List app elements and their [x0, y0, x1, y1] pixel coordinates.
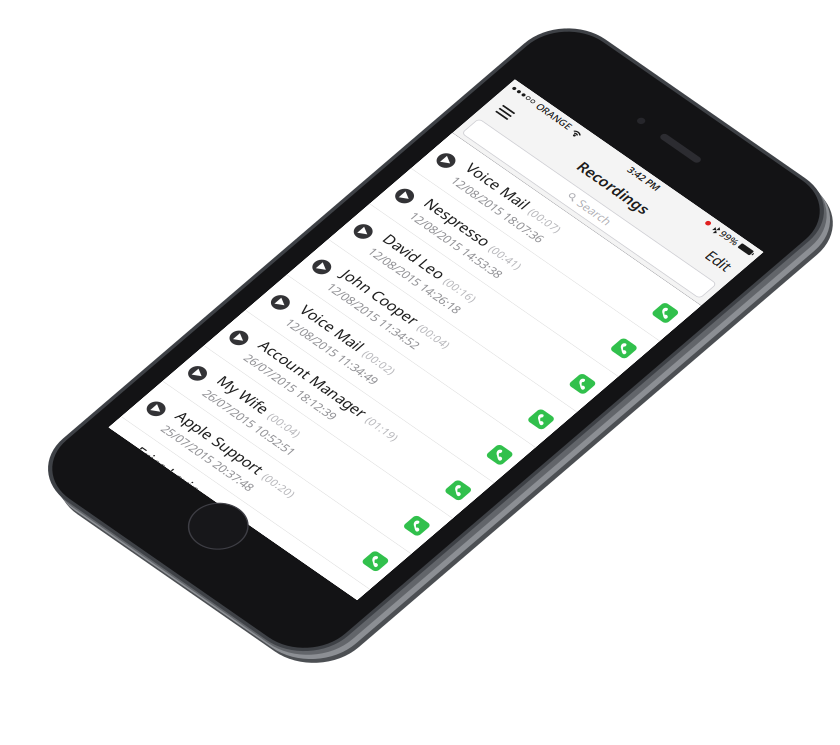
staticText: (00:16) [154, 360, 198, 378]
button[interactable]: Voice Mail [17, 209, 392, 277]
staticText: Voice Mail [62, 491, 151, 516]
staticText: 12/08/2015 14:53:38 [62, 315, 196, 334]
button[interactable]: Search [17, 170, 392, 208]
button[interactable]: Edit [339, 128, 388, 168]
button[interactable]: Call back [358, 367, 381, 390]
button[interactable]: Call back [358, 571, 381, 594]
staticText: 26/07/2015 18:12:39 [62, 587, 196, 606]
button[interactable]: Call back [358, 299, 381, 322]
staticText: 12/08/2015 11:34:49 [62, 519, 196, 538]
staticText: David Leo [62, 355, 148, 380]
button[interactable]: Voice Mail [17, 481, 392, 549]
button[interactable]: Nespresso [17, 277, 392, 345]
button[interactable]: Account Manager [17, 549, 392, 617]
staticText: (00:04) [177, 428, 221, 446]
staticText: John Cooper [62, 423, 171, 448]
staticText: (00:02) [157, 496, 201, 514]
button[interactable]: John Cooper [17, 413, 392, 481]
staticText: 12/08/2015 11:34:52 [62, 451, 196, 470]
button[interactable]: Call back [358, 639, 381, 662]
staticText: 12/08/2015 14:26:18 [62, 383, 196, 402]
button[interactable]: David Leo [17, 345, 392, 413]
button[interactable]: Call back [358, 231, 381, 254]
staticText: Account Manager [62, 559, 218, 584]
button[interactable]: My Wife [17, 617, 392, 685]
